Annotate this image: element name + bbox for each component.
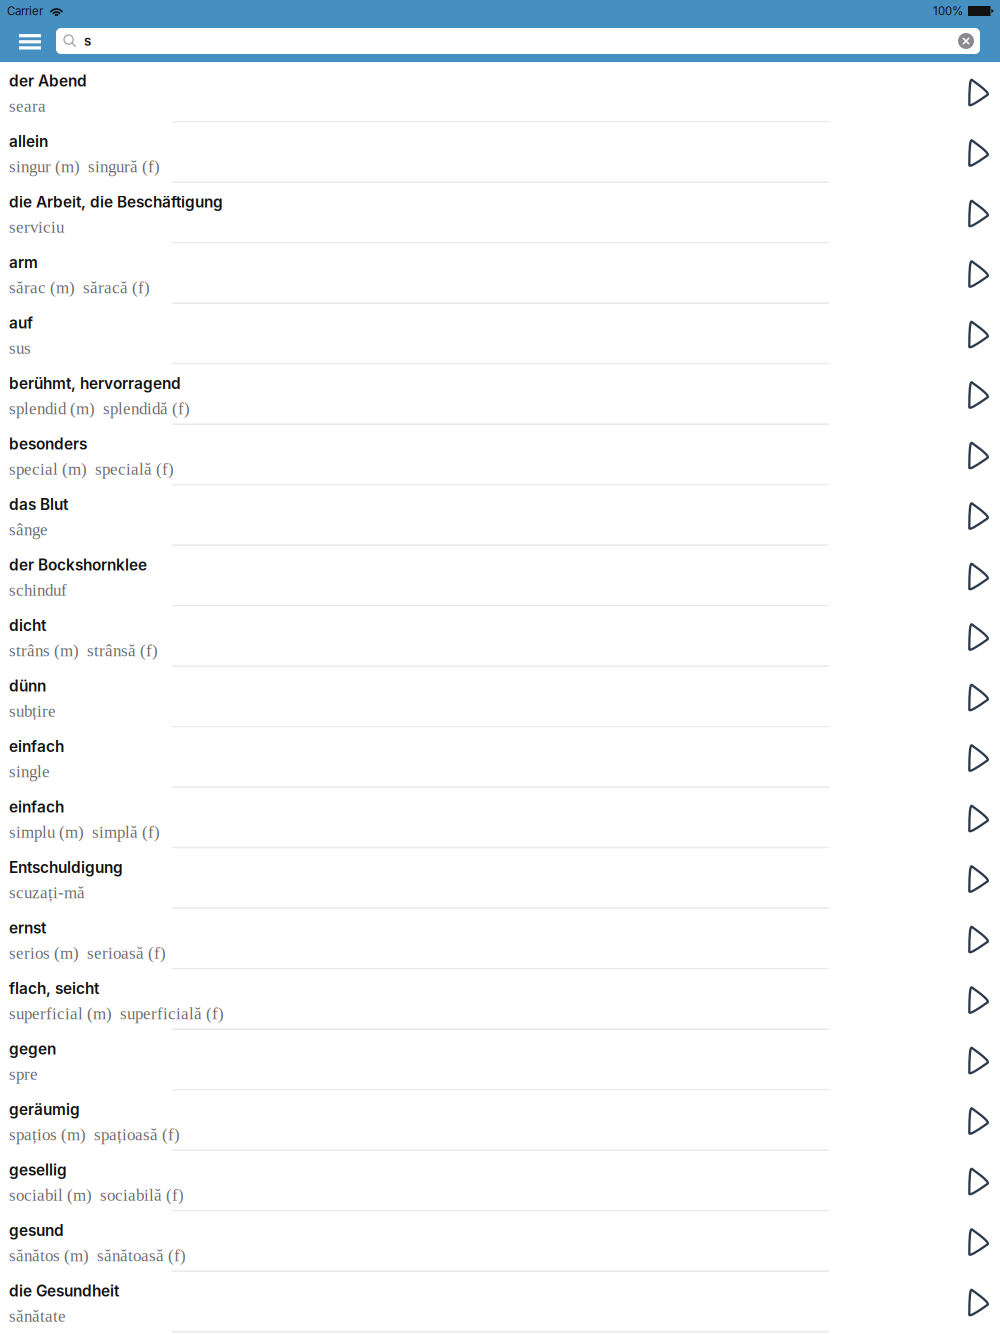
- button[interactable]: arm: [0, 243, 1000, 304]
- staticText: das Blut: [9, 495, 68, 514]
- staticText: der Bockshornklee: [9, 556, 147, 574]
- staticText: einfach: [9, 798, 64, 816]
- staticText: superficial (m) superficială (f): [9, 1004, 224, 1023]
- button[interactable]: auf: [0, 304, 1000, 364]
- button[interactable]: allein: [0, 122, 1000, 183]
- button[interactable]: ernst: [0, 909, 1000, 969]
- staticText: simplu (m) simplă (f): [9, 823, 160, 841]
- staticText: sus: [9, 339, 31, 357]
- staticText: einfach: [9, 737, 64, 756]
- staticText: der Abend: [9, 72, 87, 90]
- staticText: 100%: [933, 4, 963, 18]
- staticText: Entschuldigung: [9, 858, 123, 877]
- staticText: scuzați-mă: [9, 883, 85, 902]
- staticText: berühmt, hervorragend: [9, 374, 181, 393]
- staticText: singur (m) singură (f): [9, 157, 160, 176]
- button[interactable]: dicht: [0, 606, 1000, 667]
- staticText: dünn: [9, 677, 46, 695]
- button[interactable]: Clear text: [953, 28, 979, 54]
- button[interactable]: das Blut: [0, 485, 1000, 546]
- staticText: geräumig: [9, 1100, 80, 1119]
- button[interactable]: dünn: [0, 667, 1000, 727]
- staticText: flach, seicht: [9, 979, 99, 998]
- staticText: dicht: [9, 616, 46, 635]
- staticText: schinduf: [9, 581, 67, 599]
- button[interactable]: gesellig: [0, 1151, 1000, 1211]
- staticText: gegen: [9, 1040, 56, 1058]
- staticText: special (m) specială (f): [9, 460, 174, 478]
- staticText: sănătate: [9, 1307, 66, 1325]
- staticText: sărac (m) săracă (f): [9, 278, 150, 297]
- staticText: sociabil (m) sociabilă (f): [9, 1186, 184, 1204]
- button[interactable]: Search: [0, 22, 980, 54]
- staticText: serviciu: [9, 218, 64, 236]
- staticText: gesund: [9, 1221, 64, 1240]
- staticText: single: [9, 762, 50, 781]
- button[interactable]: flach, seicht: [0, 969, 1000, 1030]
- staticText: arm: [9, 253, 38, 272]
- staticText: sânge: [9, 520, 48, 539]
- staticText: auf: [9, 314, 33, 332]
- staticText: die Arbeit, die Beschäftigung: [9, 193, 223, 211]
- button[interactable]: gegen: [0, 1030, 1000, 1090]
- staticText: splendid (m) splendidă (f): [9, 399, 190, 418]
- button[interactable]: gesund: [0, 1211, 1000, 1272]
- staticText: gesellig: [9, 1161, 67, 1179]
- button[interactable]: die Arbeit, die Beschäftigung: [0, 183, 1000, 243]
- staticText: strâns (m) strânsă (f): [9, 641, 158, 660]
- staticText: besonders: [9, 435, 87, 453]
- staticText: s: [84, 33, 91, 49]
- button[interactable]: berühmt, hervorragend: [0, 364, 1000, 425]
- staticText: die Gesundheit: [9, 1282, 119, 1300]
- staticText: spațios (m) spațioasă (f): [9, 1125, 180, 1144]
- button[interactable]: der Bockshornklee: [0, 546, 1000, 606]
- staticText: serios (m) serioasă (f): [9, 944, 166, 962]
- button[interactable]: die Gesundheit: [0, 1272, 1000, 1332]
- button[interactable]: einfach: [0, 727, 1000, 788]
- staticText: seara: [9, 97, 46, 115]
- staticText: spre: [9, 1065, 38, 1083]
- button[interactable]: geräumig: [0, 1090, 1000, 1151]
- button[interactable]: der Abend: [0, 62, 1000, 122]
- staticText: sănătos (m) sănătoasă (f): [9, 1246, 186, 1265]
- button[interactable]: einfach: [0, 788, 1000, 848]
- button[interactable]: besonders: [0, 425, 1000, 485]
- staticText: allein: [9, 132, 48, 151]
- button[interactable]: Menu: [0, 22, 51, 60]
- staticText: Carrier: [7, 4, 43, 18]
- staticText: ernst: [9, 919, 46, 937]
- staticText: subțire: [9, 702, 56, 720]
- button[interactable]: Entschuldigung: [0, 848, 1000, 909]
